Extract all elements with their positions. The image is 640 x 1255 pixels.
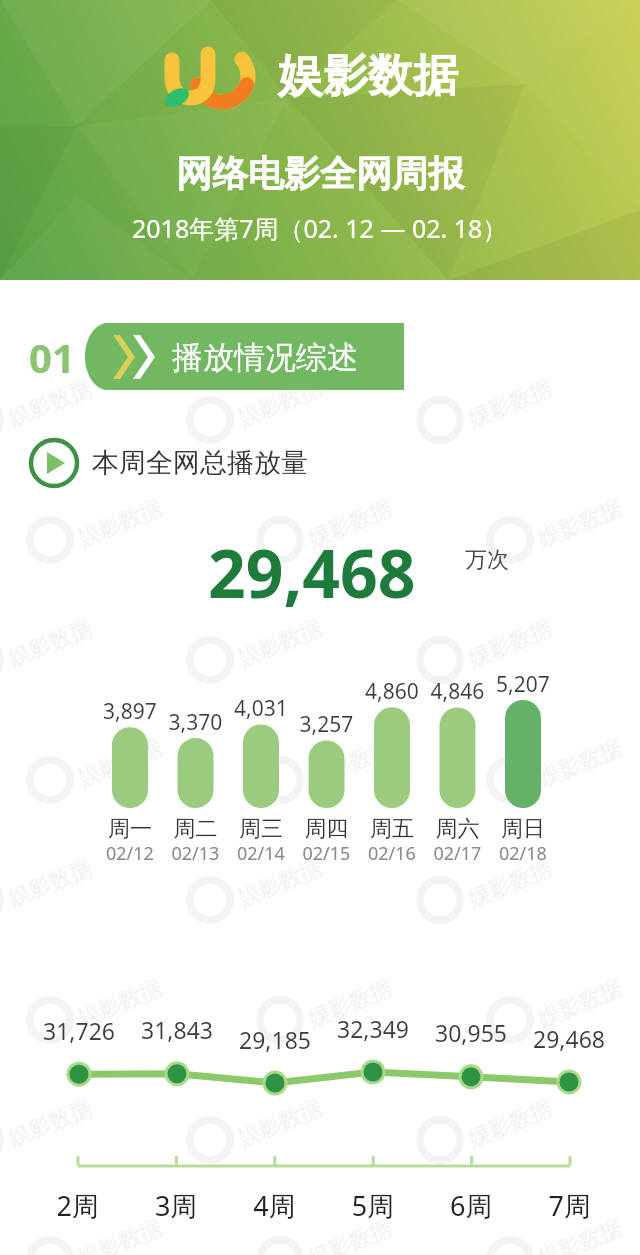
button[interactable]: 网络电影全网周报: [0, 0, 640, 1255]
